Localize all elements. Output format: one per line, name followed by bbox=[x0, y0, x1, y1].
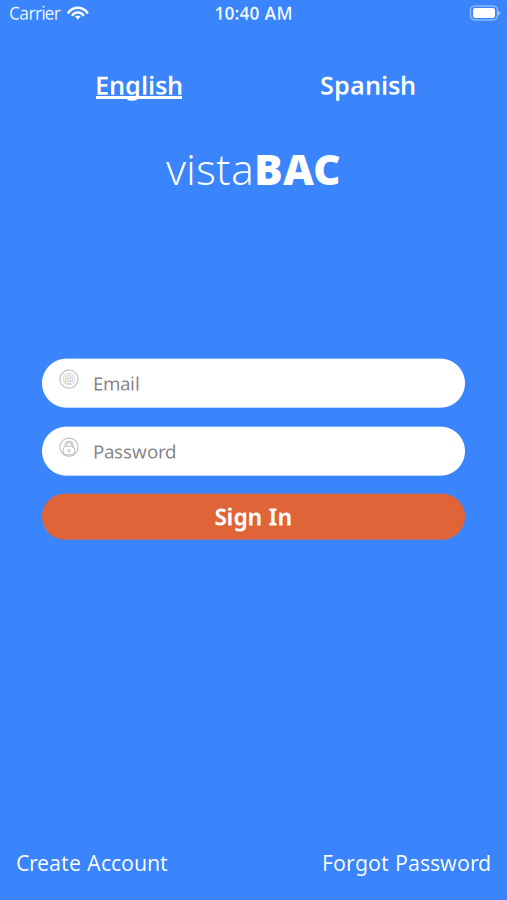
button[interactable]: English bbox=[69, 74, 209, 108]
staticText: Create Account bbox=[16, 849, 168, 877]
staticText: @ bbox=[64, 372, 74, 386]
button[interactable]: @ bbox=[42, 359, 465, 408]
staticText: Sign In bbox=[214, 502, 292, 532]
staticText: Email bbox=[93, 371, 140, 396]
staticText: English bbox=[95, 68, 183, 102]
staticText: Spanish bbox=[320, 68, 416, 102]
button[interactable]: Forgot Password bbox=[322, 843, 491, 883]
staticText: 10:40 AM bbox=[214, 1, 292, 24]
staticText: Carrier bbox=[9, 1, 61, 24]
staticText: Password bbox=[93, 439, 176, 464]
button[interactable]: Spanish bbox=[298, 74, 438, 108]
staticText: vista bbox=[166, 140, 254, 197]
button[interactable]: Sign In bbox=[42, 494, 465, 540]
staticText: BAC bbox=[254, 140, 341, 197]
button[interactable]: Password bbox=[42, 427, 465, 476]
button[interactable]: Create Account bbox=[16, 843, 168, 883]
staticText: Forgot Password bbox=[322, 849, 491, 877]
